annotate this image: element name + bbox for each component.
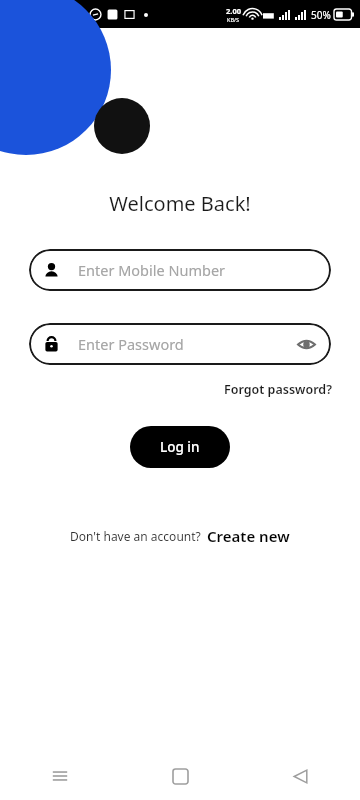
button[interactable]: Log in <box>130 426 230 468</box>
staticText: Welcome Back! <box>0 190 360 217</box>
button[interactable]: Forgot password? <box>224 381 332 398</box>
staticText: Enter Mobile Number <box>78 260 226 280</box>
staticText: Don't have an account? <box>70 528 201 544</box>
staticText: Log in <box>160 438 200 456</box>
button[interactable]: Show password <box>295 333 317 355</box>
button[interactable]: Home <box>120 752 240 800</box>
button[interactable]: Recent apps <box>0 752 120 800</box>
button[interactable]: Back <box>240 752 360 800</box>
staticText: KB/S <box>227 16 240 23</box>
button[interactable]: Enter Mobile Number <box>29 249 331 291</box>
button[interactable]: Create new <box>207 526 290 546</box>
staticText: 50% <box>311 8 331 22</box>
staticText: 2.00 <box>226 6 241 16</box>
staticText: Enter Password <box>78 334 295 354</box>
button[interactable]: Enter Password <box>29 323 331 365</box>
